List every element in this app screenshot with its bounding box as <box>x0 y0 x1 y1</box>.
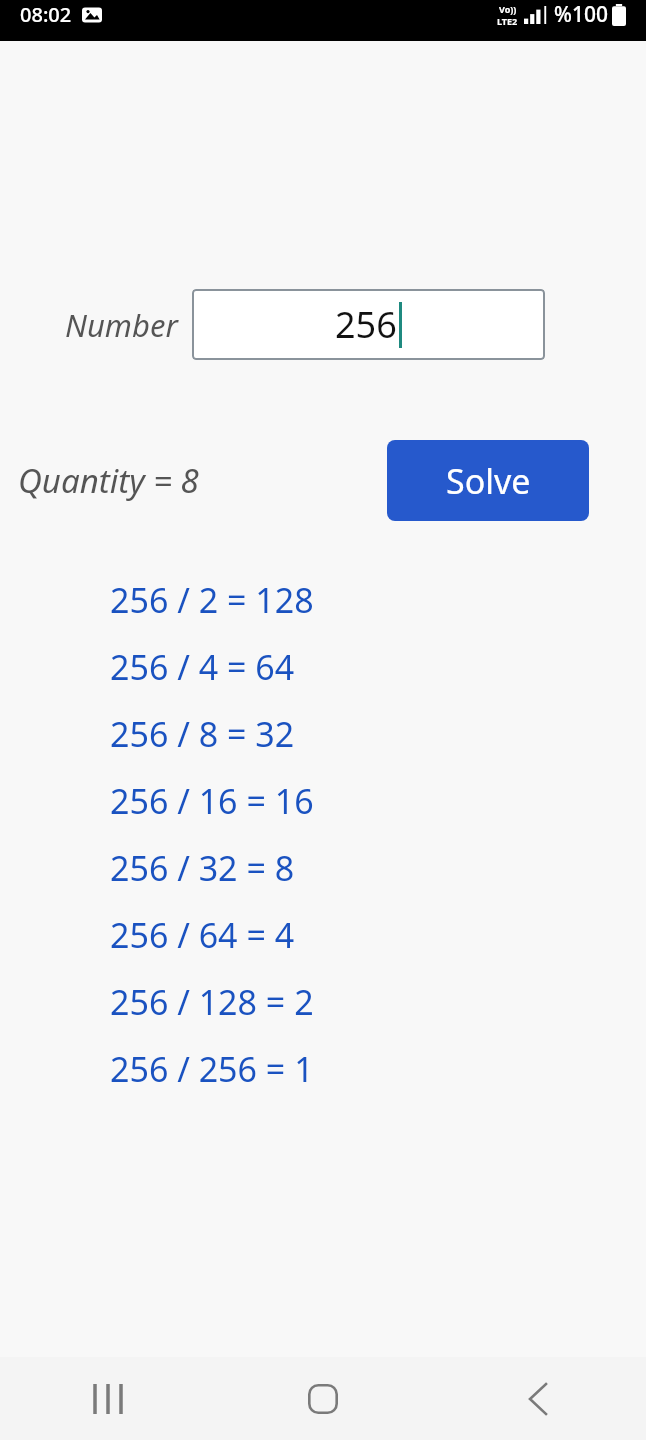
staticText: 256 / 4 = 64 <box>110 644 295 690</box>
button[interactable]: Home <box>287 1363 359 1435</box>
staticText: 256 / 64 = 4 <box>110 912 295 958</box>
button[interactable]: 256 / 32 = 8 <box>0 834 646 901</box>
staticText: 256 / 8 = 32 <box>110 711 295 757</box>
button[interactable]: 256 / 128 = 2 <box>0 968 646 1035</box>
staticText: Solve <box>446 458 531 504</box>
button[interactable]: Solve <box>387 440 589 521</box>
button[interactable]: 256 <box>192 289 545 360</box>
button[interactable]: 256 / 8 = 32 <box>0 700 646 767</box>
staticText: %100 <box>554 0 608 29</box>
staticText: Vo)) <box>499 3 517 15</box>
button[interactable]: 256 / 4 = 64 <box>0 633 646 700</box>
staticText: 256 / 16 = 16 <box>110 778 314 824</box>
button[interactable]: 256 / 2 = 128 <box>0 566 646 633</box>
staticText: LTE2 <box>497 15 518 27</box>
button[interactable]: 256 / 256 = 1 <box>0 1035 646 1102</box>
staticText: 256 <box>335 300 397 349</box>
staticText: 256 / 32 = 8 <box>110 845 295 891</box>
button[interactable]: 256 / 16 = 16 <box>0 767 646 834</box>
staticText: 256 / 256 = 1 <box>110 1046 314 1092</box>
staticText: 256 / 2 = 128 <box>110 577 314 623</box>
button[interactable]: 256 / 64 = 4 <box>0 901 646 968</box>
button[interactable]: Back <box>502 1363 574 1435</box>
button[interactable]: Recent apps <box>72 1363 144 1435</box>
staticText: Quantity = 8 <box>18 458 199 503</box>
staticText: 256 / 128 = 2 <box>110 979 314 1025</box>
staticText: 08:02 <box>20 1 72 28</box>
staticText: Number <box>65 304 178 346</box>
